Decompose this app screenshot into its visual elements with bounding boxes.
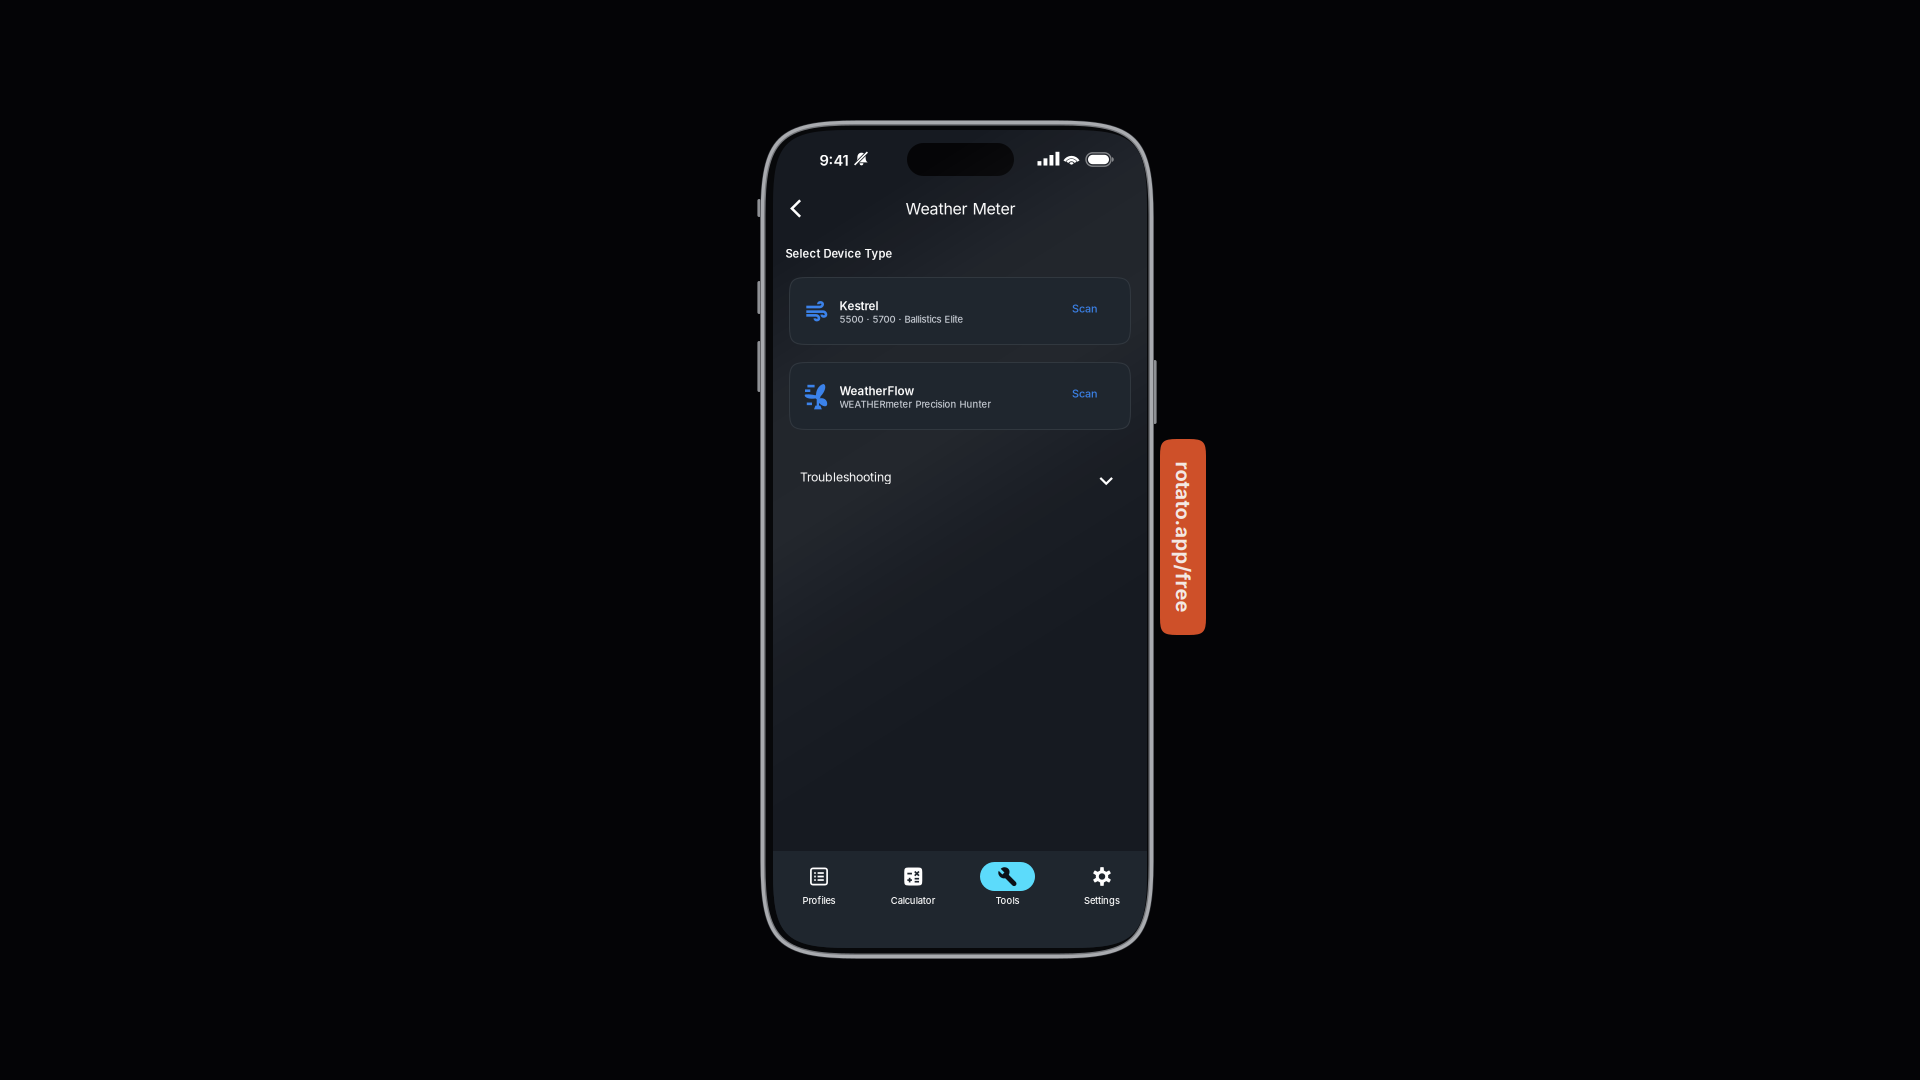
staticText: WeatherFlow	[839, 384, 914, 398]
staticText: Select Device Type	[785, 247, 892, 261]
button[interactable]: WeatherFlow	[789, 362, 1131, 430]
staticText: Scan	[1072, 387, 1097, 400]
staticText: Weather Meter	[905, 199, 1015, 218]
staticText: Tools	[995, 895, 1019, 906]
button[interactable]: Tools	[968, 862, 1046, 916]
staticText: 5500 · 5700 · Ballistics Elite	[839, 313, 963, 325]
button[interactable]: Back	[774, 187, 818, 229]
button[interactable]: Calculator	[874, 862, 952, 916]
staticText: Calculator	[891, 895, 936, 906]
staticText: Settings	[1084, 895, 1120, 906]
button[interactable]: Troubleshooting	[800, 453, 1127, 499]
staticText: Scan	[1072, 302, 1097, 315]
staticText: rotato.app/free	[1107, 525, 1258, 549]
staticText: 9:41	[819, 151, 848, 169]
button[interactable]: Settings	[1063, 862, 1141, 916]
button[interactable]: Kestrel	[789, 277, 1131, 345]
staticText: Kestrel	[839, 299, 878, 313]
staticText: WEATHERmeter Precision Hunter	[839, 398, 991, 410]
staticText: Profiles	[802, 895, 835, 906]
staticText: Troubleshooting	[800, 469, 892, 484]
button[interactable]: Profiles	[780, 862, 858, 916]
